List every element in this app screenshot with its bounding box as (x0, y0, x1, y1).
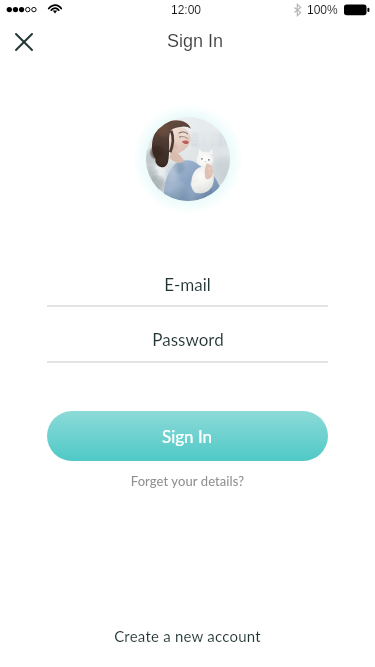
button[interactable]: Create a new account (0, 627, 375, 645)
staticText: Sign In (167, 31, 224, 51)
button[interactable]: Close (5, 24, 42, 60)
staticText: E-mail (164, 274, 211, 294)
button[interactable]: Sign In (47, 411, 328, 461)
staticText: Sign In (162, 426, 213, 446)
staticText: Password (152, 329, 224, 349)
staticText: 100% (307, 3, 338, 16)
staticText: 12:00 (171, 3, 202, 16)
button[interactable]: Forget your details? (0, 473, 375, 489)
